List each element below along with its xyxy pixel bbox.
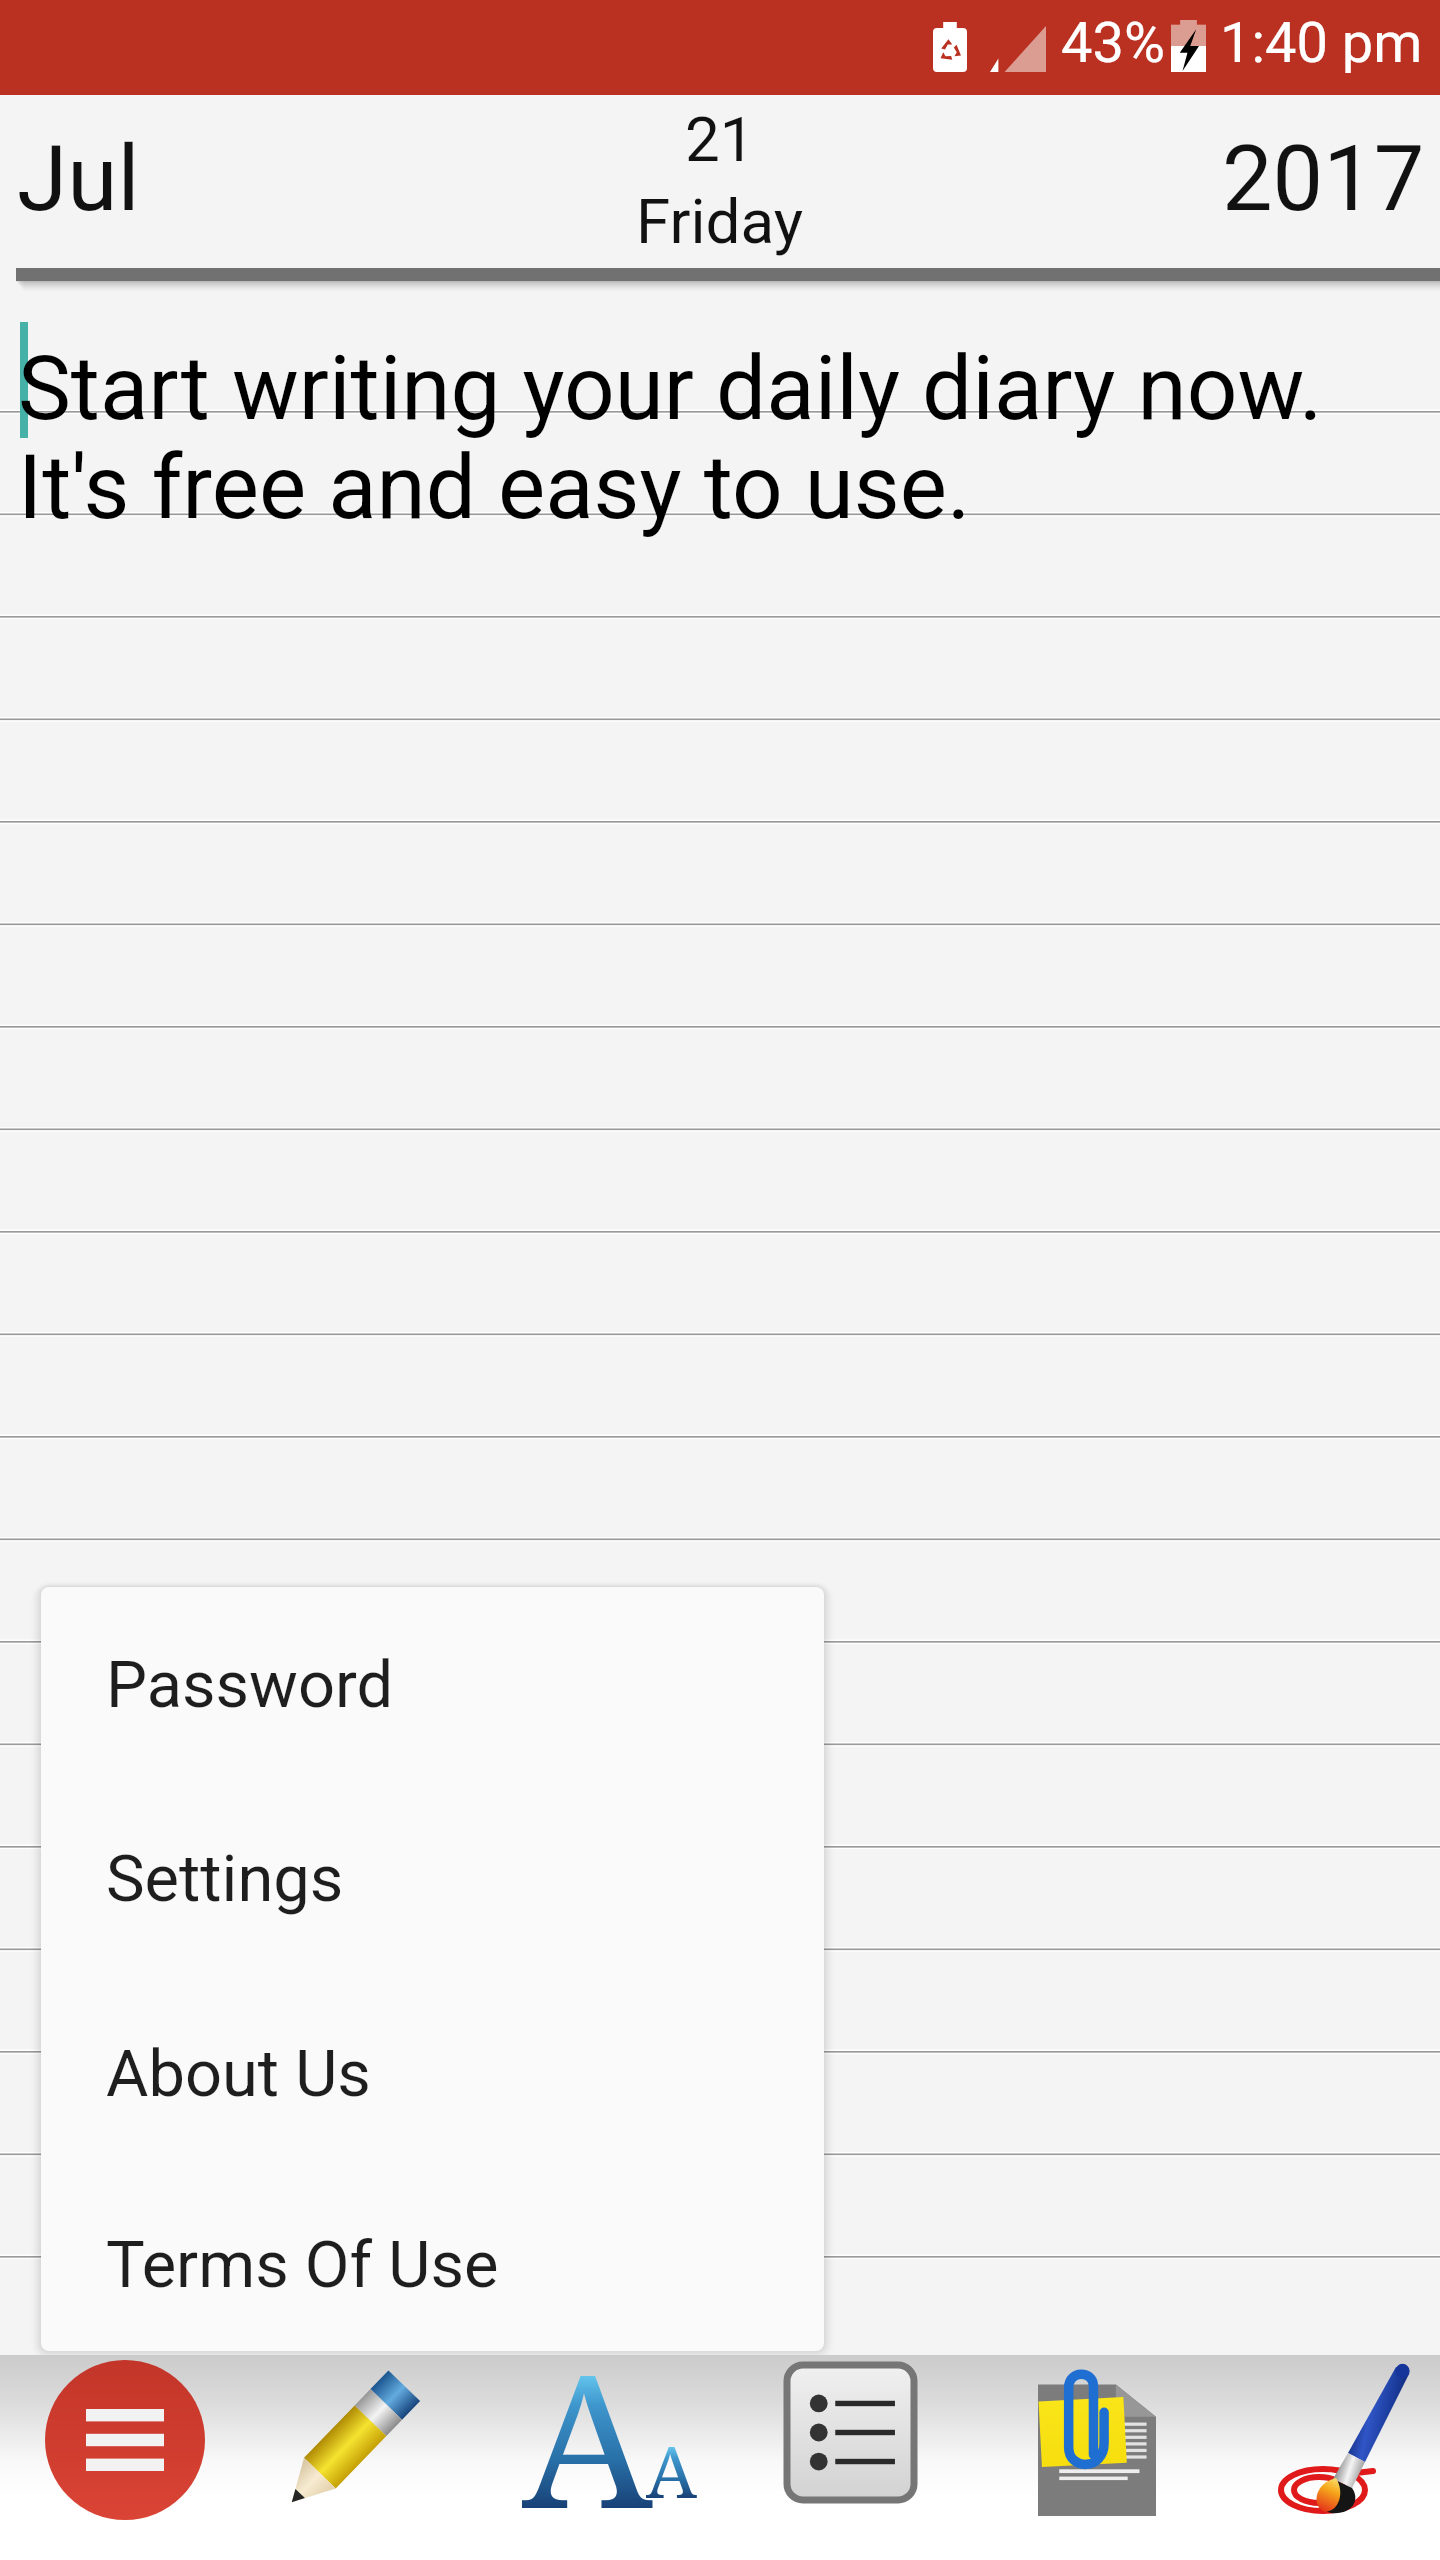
staticText: Terms Of Use — [106, 2227, 499, 2303]
staticText: Settings — [106, 1841, 344, 1917]
staticText: Password — [106, 1647, 394, 1723]
button[interactable]: Draw — [1200, 2355, 1440, 2560]
staticText: 21 — [685, 103, 755, 176]
button[interactable]: Write — [240, 2355, 480, 2560]
button[interactable]: Settings — [41, 1783, 824, 1975]
button[interactable]: Checklist — [720, 2355, 960, 2560]
staticText: 43% — [1061, 10, 1165, 76]
staticText: 2017 — [1222, 127, 1425, 232]
staticText: Jul — [17, 126, 140, 233]
button[interactable]: 2017 — [1200, 100, 1440, 260]
button[interactable]: Font size — [480, 2355, 720, 2560]
staticText: A — [646, 2421, 697, 2519]
button[interactable]: Diary note editor — [0, 292, 1440, 2352]
button[interactable]: Jul — [0, 100, 230, 260]
staticText: About Us — [106, 2036, 371, 2112]
button[interactable]: Attach — [960, 2355, 1200, 2560]
button[interactable]: Terms Of Use — [41, 2169, 824, 2351]
button[interactable]: 21 — [500, 100, 940, 265]
staticText: A — [522, 2310, 653, 2510]
staticText: 1:40 pm — [1220, 10, 1423, 76]
staticText: Start writing your daily diary now. It's… — [18, 336, 1323, 540]
button[interactable]: Menu — [0, 2355, 240, 2560]
button[interactable]: Password — [41, 1589, 824, 1781]
button[interactable]: About Us — [41, 1978, 824, 2170]
staticText: Friday — [636, 185, 804, 258]
